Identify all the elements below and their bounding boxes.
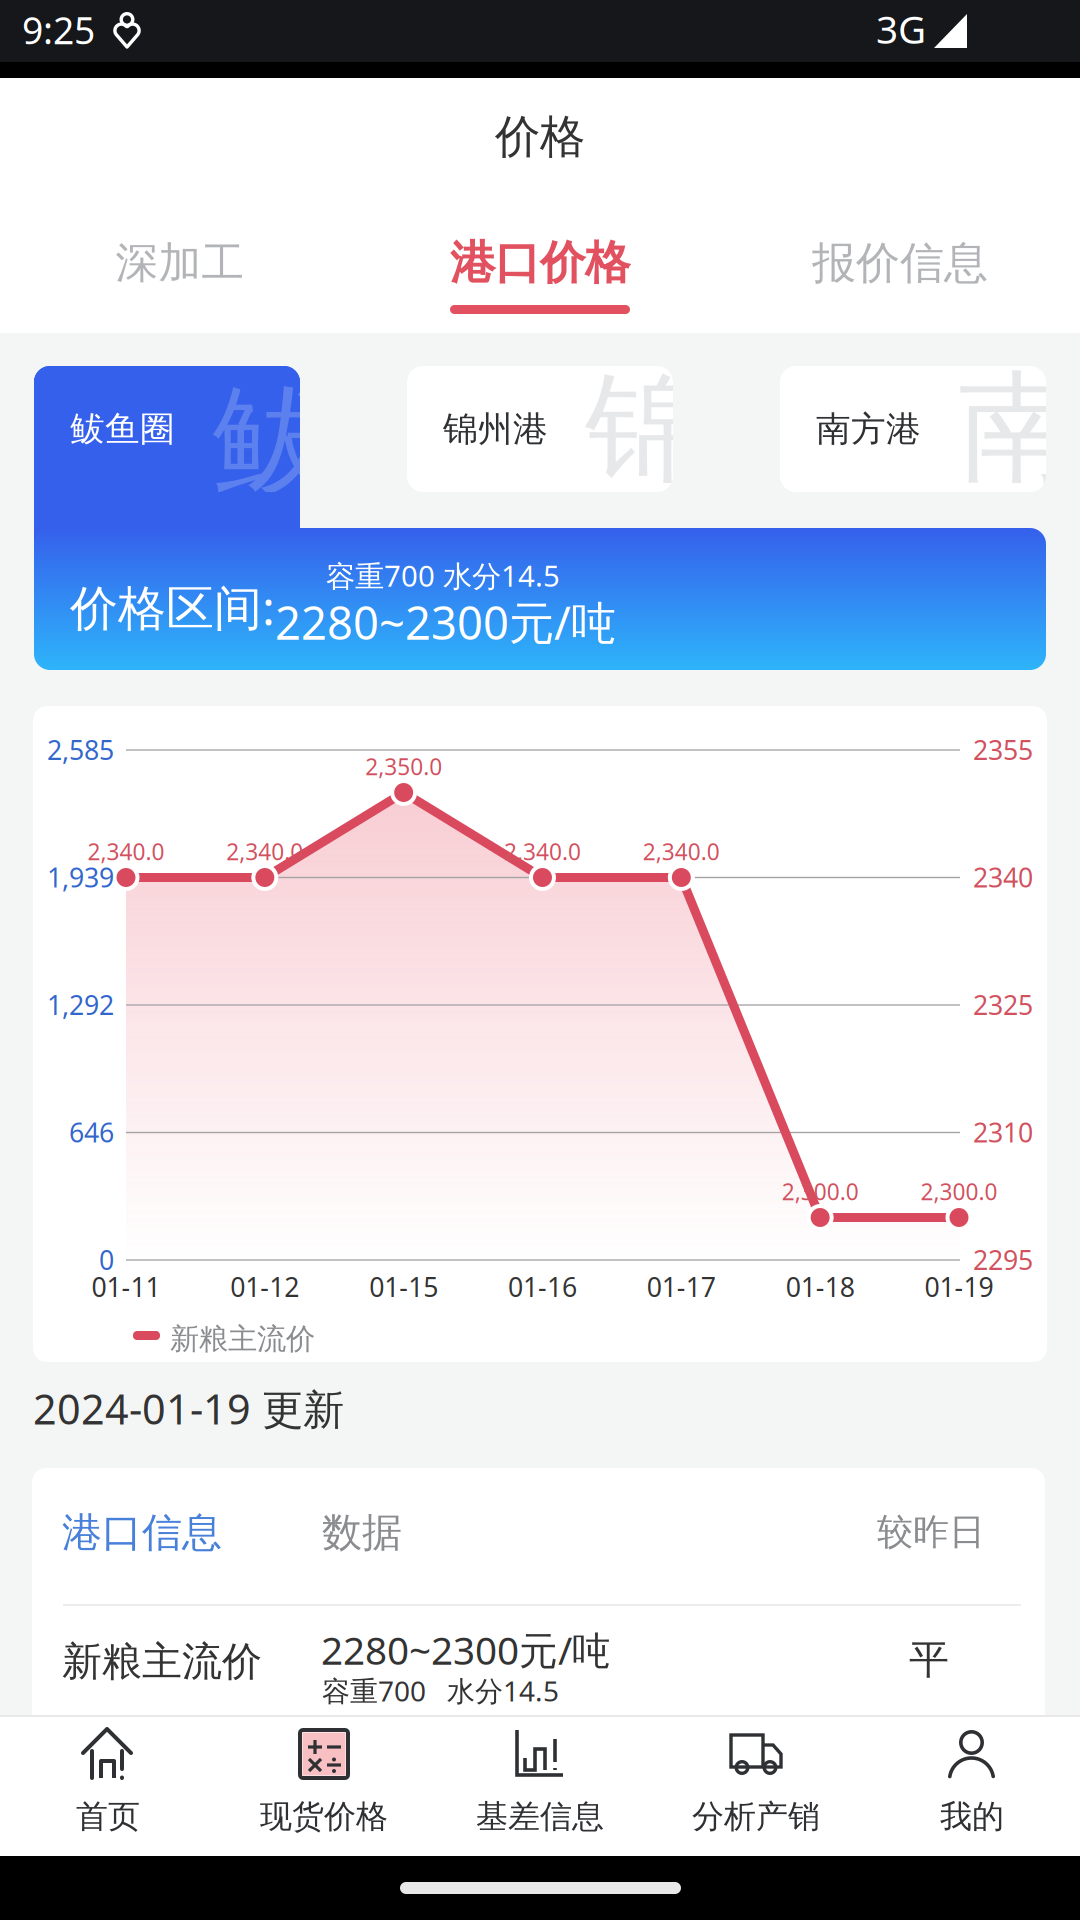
staticText: 0 [99, 1242, 114, 1277]
staticText: 2,340.0 [87, 836, 164, 867]
staticText: 基差信息 [476, 1797, 604, 1836]
staticText: 1,292 [47, 987, 114, 1022]
staticText: 2,585 [47, 732, 114, 767]
staticText: 现货价格 [260, 1797, 388, 1836]
staticText: 01-12 [230, 1269, 299, 1304]
button[interactable]: 新粮主流价 [32, 1606, 1045, 1714]
staticText: 容重700 水分14.5 [322, 1672, 559, 1709]
button[interactable]: 基差信息 [432, 1717, 648, 1856]
staticText: 2,340.0 [226, 836, 303, 867]
staticText: 价格区间: [70, 575, 275, 639]
staticText: 2325 [973, 987, 1033, 1022]
staticText: 分析产销 [692, 1797, 820, 1836]
staticText: 新粮主流价 [170, 1321, 315, 1357]
staticText: 南 [958, 355, 1078, 502]
staticText: 平 [909, 1635, 949, 1684]
staticText: 2,340.0 [643, 836, 720, 867]
staticText: 2,340.0 [504, 836, 581, 867]
staticText: 锦州港 [443, 408, 548, 451]
button[interactable]: 深加工 [0, 208, 360, 318]
staticText: 较昨日 [877, 1510, 985, 1554]
staticText: 南方港 [816, 408, 921, 451]
staticText: 1,939 [47, 859, 114, 895]
staticText: 2,300.0 [920, 1176, 997, 1207]
staticText: 2280~2300元/吨 [275, 592, 616, 652]
button[interactable]: 南 [780, 366, 1046, 492]
staticText: 鲅 [212, 368, 332, 515]
button[interactable]: 分析产销 [648, 1717, 864, 1856]
staticText: 报价信息 [812, 236, 988, 290]
staticText: 01-19 [924, 1269, 993, 1304]
staticText: 2280~2300元/吨 [321, 1624, 611, 1675]
staticText: 价格 [495, 109, 585, 165]
staticText: 01-11 [91, 1269, 160, 1304]
staticText: 2,300.0 [782, 1176, 859, 1207]
staticText: 港口价格 [450, 235, 630, 291]
staticText: 3G [876, 3, 926, 54]
staticText: 数据 [322, 1508, 402, 1557]
button[interactable]: 首页 [0, 1717, 216, 1856]
staticText: 2,350.0 [365, 751, 442, 782]
staticText: 我的 [940, 1797, 1004, 1836]
staticText: 646 [69, 1114, 114, 1150]
staticText: 首页 [76, 1797, 140, 1836]
button[interactable]: 港口价格 [360, 208, 720, 318]
staticText: 2355 [973, 732, 1033, 767]
button[interactable]: 报价信息 [720, 208, 1080, 318]
staticText: 深加工 [115, 237, 244, 289]
staticText: 01-16 [508, 1269, 577, 1304]
staticText: 9:25 [22, 5, 95, 55]
staticText: 新粮主流价 [62, 1637, 262, 1686]
button[interactable]: 锦 [407, 366, 673, 492]
button[interactable]: 鲅 [34, 366, 300, 492]
staticText: 鲅鱼圈 [70, 408, 175, 451]
staticText: 2295 [973, 1242, 1033, 1277]
staticText: 容重700 水分14.5 [326, 556, 560, 595]
staticText: 01-15 [369, 1269, 438, 1304]
staticText: 01-17 [647, 1269, 716, 1304]
staticText: 港口信息 [62, 1508, 222, 1557]
button[interactable]: 我的 [864, 1717, 1080, 1856]
staticText: 2024-01-19 更新 [33, 1381, 344, 1436]
button[interactable]: 现货价格 [216, 1717, 432, 1856]
button[interactable]: 港口信息 [62, 1508, 222, 1557]
staticText: 2310 [973, 1114, 1033, 1150]
staticText: 01-18 [786, 1269, 855, 1304]
staticText: 锦 [585, 355, 705, 502]
staticText: 2340 [973, 859, 1033, 895]
